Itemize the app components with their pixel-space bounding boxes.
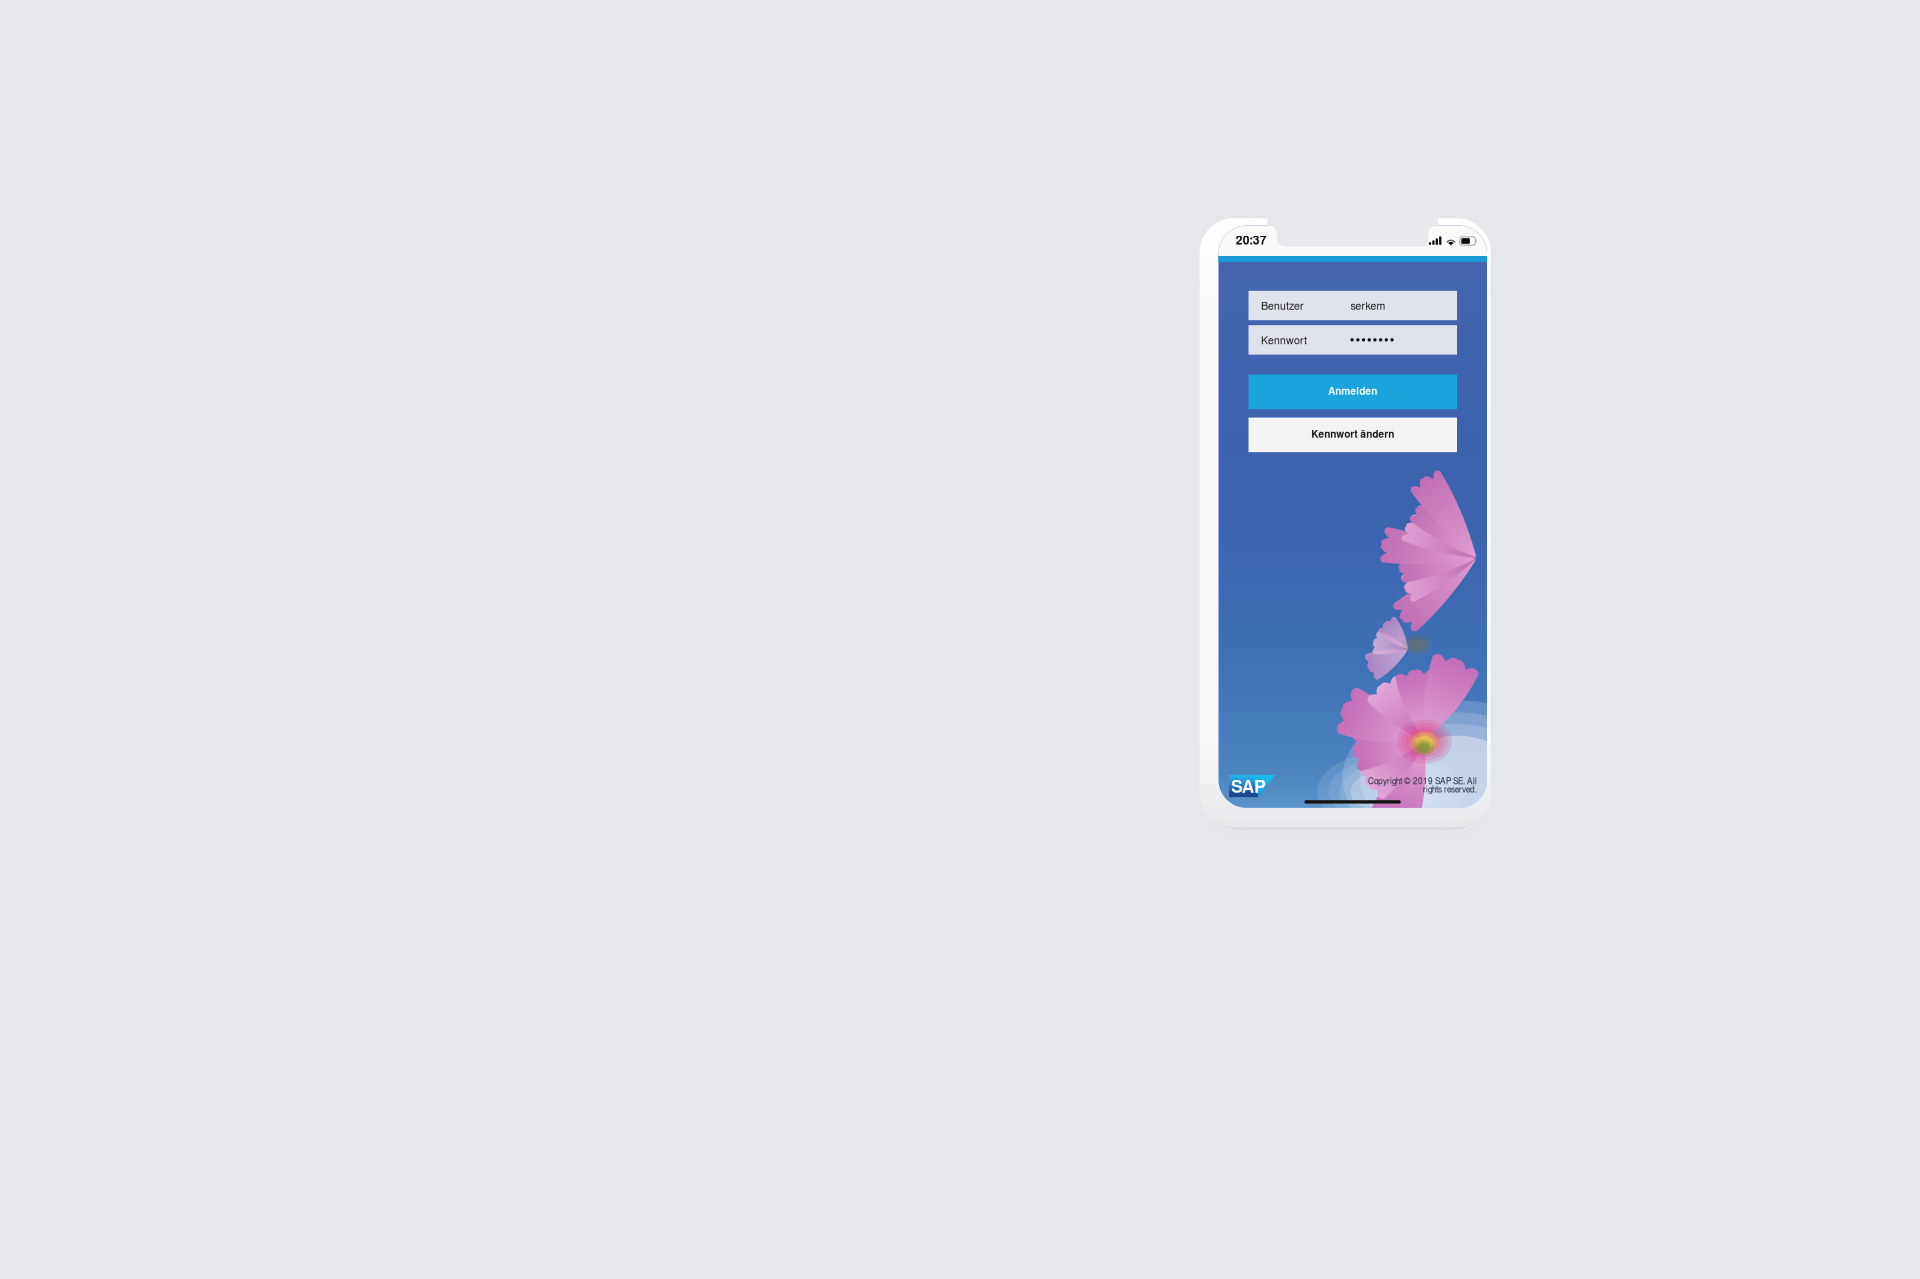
button[interactable]: Kennwort ändern — [1248, 418, 1457, 452]
staticText: serkem — [1350, 301, 1385, 312]
staticText: SAP — [1231, 779, 1266, 796]
staticText: Copyright © 2019 SAP SE. All rights rese… — [1367, 778, 1476, 794]
staticText: Kennwort — [1261, 336, 1307, 346]
button[interactable]: Anmelden — [1248, 375, 1457, 409]
staticText: Benutzer — [1261, 301, 1304, 312]
staticText: Anmelden — [1328, 387, 1377, 397]
staticText: Kennwort ändern — [1311, 430, 1394, 440]
staticText: 20:37 — [1236, 235, 1267, 247]
